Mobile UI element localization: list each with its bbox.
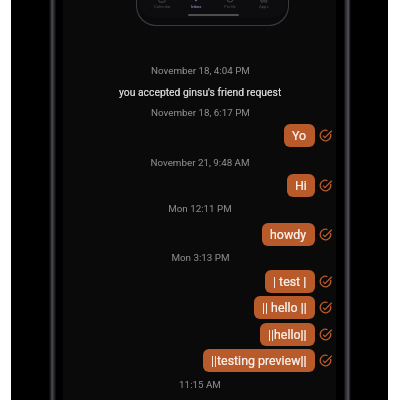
staticText: Yo xyxy=(292,128,307,143)
button[interactable]: Yo xyxy=(284,124,315,147)
staticText: 11:15 AM xyxy=(179,379,221,390)
staticText: ||testing preview|| xyxy=(211,353,307,368)
staticText: November 18, 6:17 PM xyxy=(151,107,250,118)
button[interactable]: Calendar xyxy=(145,0,179,9)
button[interactable]: Apps xyxy=(247,0,281,9)
button[interactable]: howdy xyxy=(262,223,315,246)
button[interactable]: Message delivered xyxy=(319,275,332,288)
staticText: November 21, 9:48 AM xyxy=(150,157,250,168)
staticText: Mon 3:13 PM xyxy=(171,252,230,263)
staticText: ||hello|| xyxy=(268,327,307,342)
button[interactable]: Message delivered xyxy=(319,228,332,241)
staticText: Inbox xyxy=(191,4,202,9)
button[interactable]: Message delivered xyxy=(319,301,332,314)
button[interactable]: Inbox xyxy=(179,0,213,9)
button[interactable]: Message delivered xyxy=(319,129,332,142)
button[interactable]: Message delivered xyxy=(319,354,332,367)
staticText: | test | xyxy=(273,274,307,289)
staticText: you accepted ginsu's friend request xyxy=(119,86,282,98)
button[interactable]: | test | xyxy=(265,270,315,293)
staticText: Mon 12:11 PM xyxy=(168,203,232,214)
button[interactable]: || hello || xyxy=(254,296,315,319)
staticText: Profile xyxy=(224,4,236,9)
button[interactable]: ||hello|| xyxy=(260,323,315,346)
button[interactable]: Profile xyxy=(213,0,247,9)
staticText: howdy xyxy=(270,227,307,242)
staticText: Apps xyxy=(259,4,269,9)
staticText: Calendar xyxy=(154,4,171,9)
button[interactable]: Hi xyxy=(287,174,315,197)
staticText: Hi xyxy=(295,178,307,193)
staticText: November 18, 4:04 PM xyxy=(151,65,250,76)
button[interactable]: ||testing preview|| xyxy=(203,349,315,372)
button[interactable]: Message delivered xyxy=(319,179,332,192)
button[interactable]: Message delivered xyxy=(319,328,332,341)
staticText: || hello || xyxy=(262,300,307,315)
